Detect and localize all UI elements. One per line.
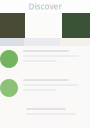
button[interactable] [0, 44, 90, 73]
button[interactable] [0, 102, 90, 120]
staticText: Discover [28, 1, 61, 12]
button[interactable] [0, 73, 90, 102]
